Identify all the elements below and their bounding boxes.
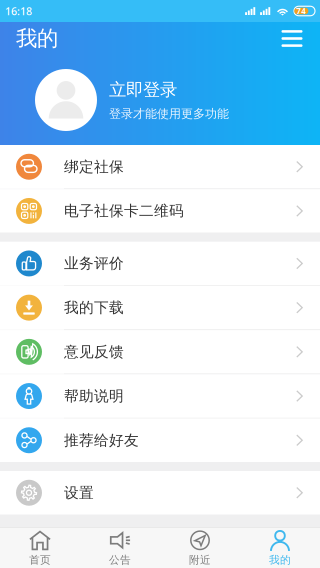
button[interactable]: 首页 xyxy=(0,527,80,568)
button[interactable]: 推荐给好友 xyxy=(0,418,320,462)
staticText: 附近 xyxy=(189,553,211,566)
button[interactable]: 业务评价 xyxy=(0,242,320,285)
staticText: 绑定社保 xyxy=(64,158,124,176)
staticText: 设置 xyxy=(64,484,94,502)
staticText: 公告 xyxy=(109,553,131,566)
button[interactable]: 我的下载 xyxy=(0,286,320,329)
staticText: 16:18 xyxy=(5,4,32,18)
staticText: 首页 xyxy=(29,553,51,566)
staticText: 电子社保卡二维码 xyxy=(64,202,184,220)
button[interactable]: 公告 xyxy=(80,527,160,568)
button[interactable]: 帮助说明 xyxy=(0,374,320,418)
staticText: 我的 xyxy=(269,553,291,566)
button[interactable]: 绑定社保 xyxy=(0,145,320,188)
button[interactable]: 意见反馈 xyxy=(0,330,320,374)
staticText: 推荐给好友 xyxy=(64,431,139,449)
staticText: 登录才能使用更多功能 xyxy=(109,106,229,121)
button[interactable]: 设置 xyxy=(0,471,320,514)
staticText: 业务评价 xyxy=(64,254,124,272)
staticText: 我的下载 xyxy=(64,299,124,317)
button[interactable]: 我的 xyxy=(240,527,320,568)
staticText: 我的 xyxy=(16,25,58,52)
button[interactable]: 电子社保卡二维码 xyxy=(0,189,320,233)
staticText: 立即登录 xyxy=(109,79,177,100)
staticText: 帮助说明 xyxy=(64,387,124,405)
staticText: 意见反馈 xyxy=(64,343,124,361)
button[interactable]: 附近 xyxy=(160,527,240,568)
button[interactable]: Menu xyxy=(274,21,310,55)
staticText: 74 xyxy=(296,6,306,16)
